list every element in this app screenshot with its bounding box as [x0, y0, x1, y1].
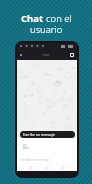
button[interactable]: Recents — [60, 165, 66, 171]
button[interactable]: Add — [19, 53, 23, 57]
staticText: chat — [42, 52, 50, 57]
staticText: con el — [46, 12, 72, 25]
staticText: Escribe un mensaje — [23, 132, 55, 137]
staticText: usuario — [30, 23, 63, 36]
staticText: BC — [23, 144, 27, 148]
button[interactable]: Video call — [70, 53, 74, 57]
button[interactable]: Escribe un mensaje — [20, 131, 75, 138]
staticText: Chat — [21, 12, 46, 25]
button[interactable]: Back — [28, 165, 34, 171]
button[interactable]: Home — [44, 165, 50, 171]
staticText: Escribe un mensaje — [21, 158, 50, 162]
staticText: joan — [23, 146, 29, 150]
